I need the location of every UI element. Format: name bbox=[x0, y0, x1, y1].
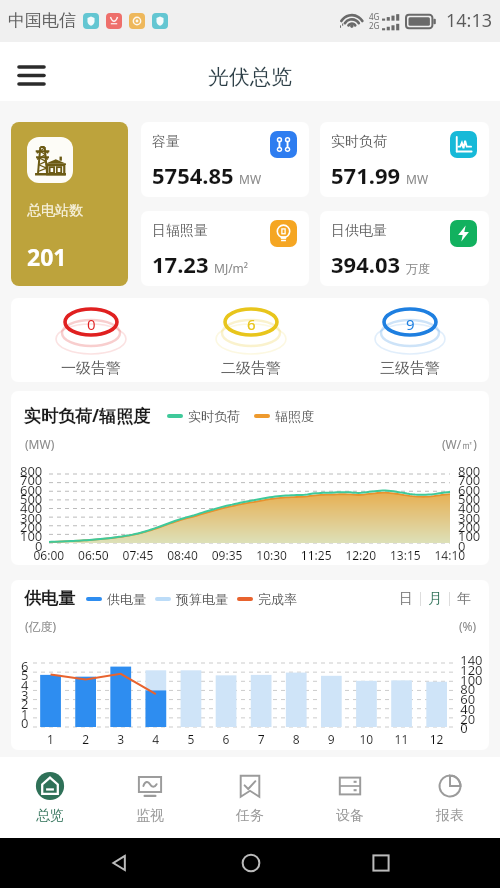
button[interactable]: 月 bbox=[421, 590, 449, 608]
other: Back bbox=[109, 852, 131, 874]
staticText: 完成率 bbox=[258, 591, 297, 607]
button[interactable]: 报表 bbox=[400, 757, 500, 838]
button[interactable]: 容量 bbox=[141, 122, 309, 197]
staticText: 9 bbox=[406, 314, 415, 334]
staticText: 万度 bbox=[406, 261, 430, 276]
staticText: 报表 bbox=[436, 807, 464, 825]
staticText: 辐照度 bbox=[275, 408, 314, 424]
staticText: 三级告警 bbox=[380, 359, 440, 378]
staticText: 571.99 bbox=[331, 160, 401, 190]
button[interactable]: 任务 bbox=[200, 757, 300, 838]
staticText: 中国电信 bbox=[8, 10, 76, 31]
staticText: 年 bbox=[457, 590, 471, 608]
staticText: (MW) bbox=[25, 436, 55, 452]
staticText: 14:13 bbox=[446, 8, 493, 33]
staticText: 6 bbox=[247, 314, 256, 334]
staticText: (%) bbox=[459, 618, 477, 634]
button[interactable]: 实时负荷 bbox=[320, 122, 489, 197]
button[interactable]: 日供电量 bbox=[320, 211, 489, 286]
staticText: 监视 bbox=[136, 807, 164, 825]
staticText: 预算电量 bbox=[176, 591, 228, 607]
staticText: 0 bbox=[87, 314, 96, 334]
staticText: 容量 bbox=[152, 133, 180, 151]
button[interactable]: 日辐照量 bbox=[141, 211, 309, 286]
button[interactable]: 日 bbox=[392, 590, 420, 608]
staticText: MW bbox=[239, 171, 262, 187]
other: Recents bbox=[371, 853, 391, 873]
button[interactable]: 9 bbox=[330, 298, 489, 382]
staticText: 供电量 bbox=[107, 591, 146, 607]
other: Home bbox=[240, 852, 262, 874]
button[interactable]: 总览 bbox=[0, 757, 100, 838]
staticText: 日供电量 bbox=[331, 222, 387, 240]
staticText: 一级告警 bbox=[61, 359, 121, 378]
staticText: 201 bbox=[27, 241, 67, 272]
staticText: 394.03 bbox=[331, 249, 401, 279]
staticText: 实时负荷 bbox=[331, 133, 387, 151]
button[interactable]: 年 bbox=[450, 590, 478, 608]
staticText: MW bbox=[406, 171, 429, 187]
button[interactable]: 设备 bbox=[300, 757, 400, 838]
staticText: (W/㎡) bbox=[442, 436, 477, 452]
button[interactable]: 0 bbox=[11, 298, 171, 382]
staticText: 总览 bbox=[36, 807, 64, 825]
staticText: (亿度) bbox=[25, 618, 57, 634]
staticText: 5754.85 bbox=[152, 160, 234, 190]
button[interactable]: Menu bbox=[8, 52, 54, 98]
staticText: 日 bbox=[399, 590, 413, 608]
staticText: 二级告警 bbox=[221, 359, 281, 378]
staticText: 任务 bbox=[236, 807, 264, 825]
staticText: 光伏总览 bbox=[208, 64, 292, 90]
staticText: 实时负荷/辐照度 bbox=[24, 404, 151, 427]
staticText: 月 bbox=[428, 590, 442, 608]
button[interactable]: 监视 bbox=[100, 757, 200, 838]
staticText: 17.23 bbox=[152, 249, 209, 279]
button[interactable]: 总电站数 bbox=[11, 122, 128, 286]
staticText: 供电量 bbox=[24, 588, 75, 609]
button[interactable]: 6 bbox=[171, 298, 330, 382]
staticText: MJ/m² bbox=[214, 260, 249, 276]
staticText: 日辐照量 bbox=[152, 222, 208, 240]
staticText: 实时负荷 bbox=[188, 408, 240, 424]
staticText: 总电站数 bbox=[27, 202, 83, 220]
staticText: 设备 bbox=[336, 807, 364, 825]
